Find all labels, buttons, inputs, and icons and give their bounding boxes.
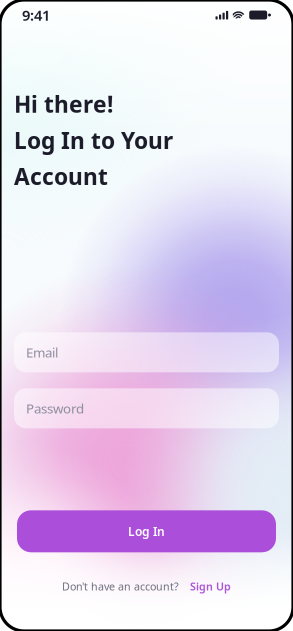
staticText: Log In [128,523,165,539]
staticText: Password [26,399,84,417]
staticText: Account [14,161,108,191]
button[interactable]: Sign Up [190,579,231,593]
staticText: Hi there! [14,89,113,119]
staticText: Email [26,343,58,361]
button[interactable]: Password [14,388,279,428]
staticText: Sign Up [190,579,231,593]
button[interactable]: Email [14,332,279,372]
button[interactable]: Log In [17,510,276,552]
staticText: Don't have an account? [62,579,179,593]
staticText: 9:41 [22,5,50,25]
staticText: Log In to Your [14,125,173,155]
